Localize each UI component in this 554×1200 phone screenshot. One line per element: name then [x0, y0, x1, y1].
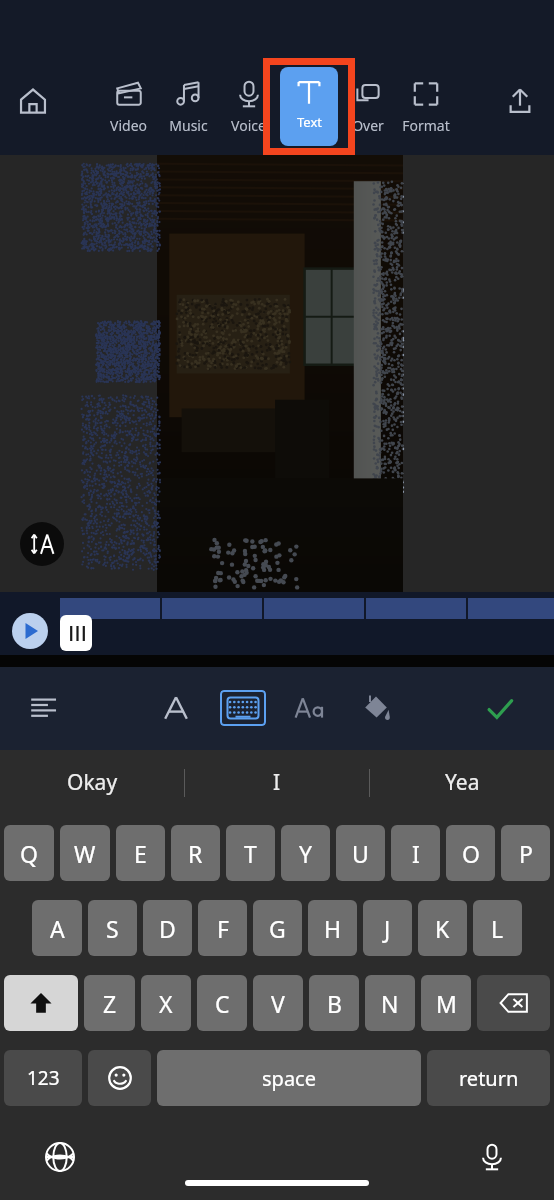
staticText: Voice: [231, 116, 266, 135]
button[interactable]: E: [116, 825, 165, 881]
button[interactable]: 123: [4, 1050, 82, 1106]
staticText: R: [188, 838, 203, 869]
button[interactable]: W: [60, 825, 110, 881]
button[interactable]: C: [197, 975, 247, 1031]
button[interactable]: X: [141, 975, 191, 1031]
staticText: return: [459, 1065, 519, 1092]
button[interactable]: D: [143, 900, 192, 956]
button[interactable]: Text option: [353, 685, 399, 731]
staticText: J: [384, 913, 391, 944]
staticText: P: [519, 838, 533, 869]
button[interactable]: A: [32, 900, 82, 956]
button[interactable]: Shift: [4, 975, 78, 1031]
button[interactable]: Home: [10, 78, 56, 124]
button[interactable]: Switch language: [36, 1133, 84, 1181]
button[interactable]: S: [88, 900, 137, 956]
staticText: G: [269, 913, 286, 944]
button[interactable]: P: [501, 825, 550, 881]
button[interactable]: G: [253, 900, 302, 956]
button[interactable]: K: [418, 900, 467, 956]
button[interactable]: Okay: [0, 750, 184, 815]
staticText: Text: [297, 113, 322, 131]
staticText: 123: [27, 1065, 60, 1091]
staticText: space: [262, 1065, 316, 1092]
staticText: M: [436, 988, 457, 1019]
staticText: U: [352, 838, 369, 869]
staticText: T: [244, 838, 257, 869]
button[interactable]: Yea: [370, 750, 554, 815]
staticText: B: [327, 988, 342, 1019]
staticText: Okay: [67, 768, 118, 797]
button[interactable]: T: [226, 825, 275, 881]
button[interactable]: V: [253, 975, 303, 1031]
button[interactable]: U: [336, 825, 385, 881]
button[interactable]: Keyboard: [220, 690, 266, 726]
staticText: I: [412, 838, 420, 869]
staticText: K: [435, 913, 450, 944]
staticText: Over: [352, 116, 384, 135]
staticText: A: [50, 913, 65, 944]
staticText: E: [134, 838, 147, 869]
button[interactable]: I: [391, 825, 440, 881]
button[interactable]: Over: [338, 70, 398, 148]
button[interactable]: Export: [497, 78, 543, 124]
button[interactable]: Format: [396, 70, 456, 148]
button[interactable]: Voice: [218, 70, 278, 148]
button[interactable]: Z: [84, 975, 135, 1031]
staticText: I: [273, 768, 281, 797]
button[interactable]: Y: [281, 825, 330, 881]
button[interactable]: J: [363, 900, 412, 956]
button[interactable]: M: [421, 975, 471, 1031]
staticText: O: [462, 838, 480, 869]
staticText: X: [159, 988, 173, 1019]
button[interactable]: Text option: [153, 685, 199, 731]
button[interactable]: Text option: [22, 685, 68, 731]
staticText: Format: [402, 116, 450, 135]
button[interactable]: Play: [12, 613, 48, 649]
staticText: Q: [20, 838, 38, 869]
button[interactable]: Confirm: [478, 687, 522, 731]
staticText: Video: [110, 116, 147, 135]
button[interactable]: R: [171, 825, 220, 881]
button[interactable]: I: [185, 750, 369, 815]
button[interactable]: H: [308, 900, 357, 956]
button[interactable]: Voice input: [468, 1133, 516, 1181]
button[interactable]: Emoji: [88, 1050, 151, 1106]
staticText: Y: [299, 838, 313, 869]
staticText: Z: [103, 988, 117, 1019]
button[interactable]: N: [365, 975, 415, 1031]
staticText: S: [106, 913, 119, 944]
button[interactable]: O: [446, 825, 495, 881]
staticText: F: [217, 913, 229, 944]
staticText: Music: [169, 116, 208, 135]
staticText: C: [215, 988, 230, 1019]
button[interactable]: Video: [98, 70, 158, 148]
button[interactable]: [60, 598, 160, 619]
button[interactable]: space: [157, 1050, 421, 1106]
button[interactable]: Q: [4, 825, 54, 881]
button[interactable]: L: [473, 900, 522, 956]
button[interactable]: B: [309, 975, 359, 1031]
staticText: H: [324, 913, 342, 944]
staticText: D: [159, 913, 176, 944]
staticText: N: [381, 988, 399, 1019]
button[interactable]: Auto text size: [20, 522, 64, 566]
staticText: V: [271, 988, 285, 1019]
button[interactable]: Backspace: [477, 975, 550, 1031]
button[interactable]: return: [427, 1050, 550, 1106]
staticText: L: [491, 913, 504, 944]
button[interactable]: Trim handle: [60, 615, 92, 651]
button[interactable]: F: [198, 900, 247, 956]
button[interactable]: Music: [158, 70, 218, 148]
button[interactable]: Text: [263, 58, 355, 155]
button[interactable]: Text option: [287, 685, 333, 731]
staticText: W: [74, 838, 96, 869]
staticText: Yea: [445, 768, 480, 797]
